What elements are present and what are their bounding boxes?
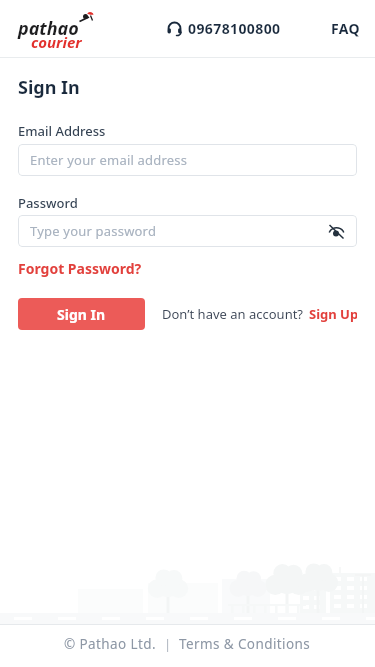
staticText: Email Address: [18, 122, 106, 140]
button[interactable]: Enter your email address: [18, 144, 357, 176]
staticText: |: [164, 635, 172, 653]
staticText: Sign In: [18, 75, 80, 100]
button[interactable]: Sign Up: [309, 305, 357, 323]
staticText: courier: [31, 32, 82, 52]
staticText: Don’t have an account?: [162, 305, 303, 323]
staticText: Sign In: [57, 305, 106, 324]
button[interactable]: 09678100800: [167, 19, 281, 38]
staticText: FAQ: [331, 19, 360, 38]
button[interactable]: Forgot Password?: [18, 259, 142, 278]
button[interactable]: Type your password: [18, 215, 357, 247]
staticText: Forgot Password?: [18, 259, 142, 278]
staticText: Terms & Conditions: [179, 635, 311, 653]
staticText: pathao: [18, 16, 79, 41]
button[interactable]: Sign In: [18, 298, 145, 330]
staticText: Password: [18, 194, 78, 212]
button[interactable]: pathao: [18, 7, 98, 51]
staticText: Sign Up: [309, 305, 357, 323]
staticText: 09678100800: [188, 19, 281, 38]
staticText: © Pathao Ltd.: [64, 635, 157, 653]
button[interactable]: Terms & Conditions: [179, 635, 311, 653]
staticText: Type your password: [30, 222, 157, 240]
staticText: Enter your email address: [30, 151, 188, 169]
button[interactable]: FAQ: [331, 19, 360, 38]
